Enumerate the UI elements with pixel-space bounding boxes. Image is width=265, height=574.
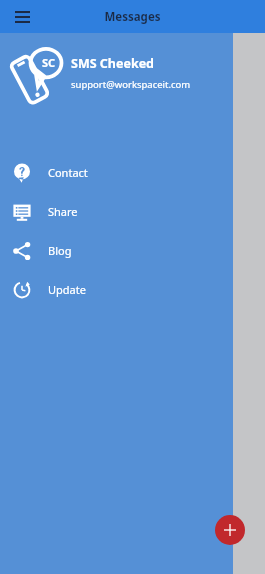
staticText: SMS Cheeked [71,55,155,72]
button[interactable]: Contact [0,153,233,192]
button[interactable]: Blog [0,231,233,270]
staticText: Messages [104,9,161,25]
button[interactable]: New message [215,515,245,545]
staticText: Share [48,204,78,219]
staticText: Contact [48,165,88,180]
button[interactable]: Open navigation menu [8,3,36,31]
button[interactable]: Messages [104,9,161,25]
staticText: SC [42,55,56,70]
staticText: Update [48,282,86,297]
staticText: Blog [48,243,72,258]
staticText: support@workspaceit.com [71,78,191,91]
button[interactable]: Share [0,192,233,231]
button[interactable]: Update [0,270,233,309]
